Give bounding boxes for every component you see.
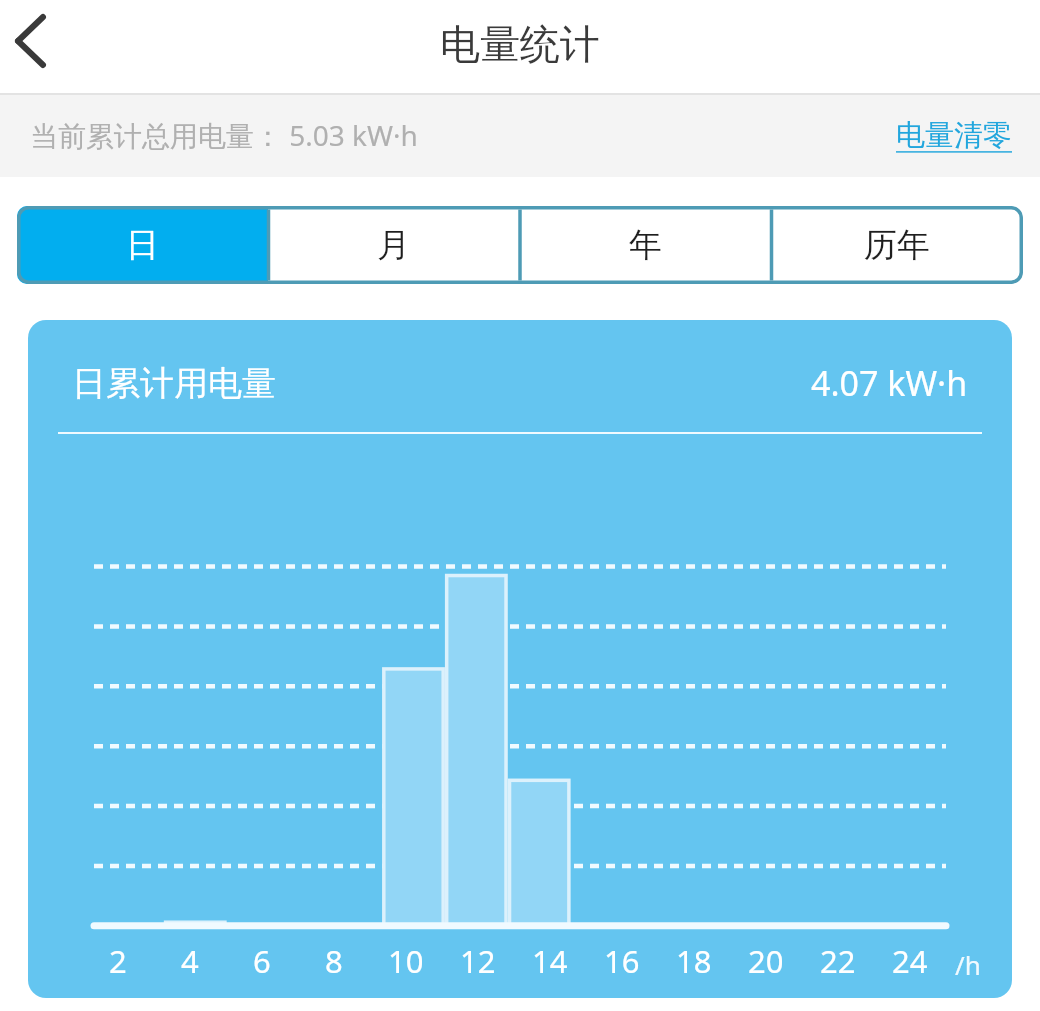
staticText: 年 [629,224,662,266]
button[interactable]: 年 [519,206,771,284]
button[interactable]: 月 [268,206,519,284]
staticText: 4.07 kW·h [811,360,968,406]
staticText: /h [955,947,981,982]
staticText: 当前累计总用电量： 5.03 kW·h [30,116,418,154]
staticText: 6 [253,940,271,982]
staticText: 18 [676,940,712,982]
staticText: 月 [377,224,410,266]
button[interactable]: 日 [17,206,268,284]
staticText: 4 [181,940,199,982]
button[interactable]: 历年 [771,206,1023,284]
staticText: 2 [109,940,127,982]
staticText: 电量统计 [440,19,600,69]
staticText: 日累计用电量 [72,362,276,405]
staticText: 24 [892,940,928,982]
staticText: 8 [325,940,343,982]
staticText: 电量清零 [896,117,1012,154]
staticText: 20 [748,940,784,982]
staticText: 日 [126,224,159,266]
staticText: 历年 [864,224,930,266]
staticText: 14 [532,940,568,982]
staticText: 10 [388,940,424,982]
button[interactable]: 电量清零 [896,117,1012,154]
staticText: 22 [820,940,856,982]
button[interactable]: Back [0,3,88,91]
staticText: 12 [460,940,496,982]
staticText: 16 [604,940,640,982]
